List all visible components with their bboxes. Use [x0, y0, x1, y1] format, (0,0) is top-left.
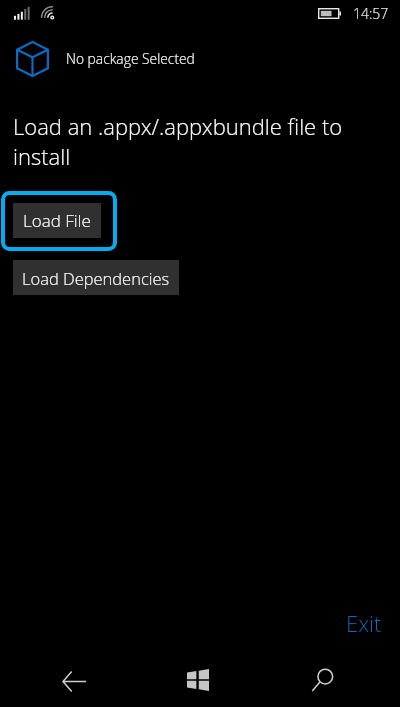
button[interactable]: Load File: [1, 191, 117, 251]
staticText: No package Selected: [66, 49, 195, 68]
button[interactable]: Search: [299, 658, 343, 702]
staticText: 14:57: [353, 4, 389, 23]
button[interactable]: Start: [176, 658, 220, 702]
staticText: Load File: [23, 209, 91, 232]
button[interactable]: Back: [52, 659, 96, 703]
button[interactable]: Exit: [334, 598, 394, 648]
button[interactable]: Load Dependencies: [13, 260, 179, 295]
staticText: Exit: [346, 608, 382, 638]
staticText: Load Dependencies: [22, 267, 170, 289]
staticText: Load an .appx/.appxbundle file to instal…: [13, 111, 365, 171]
